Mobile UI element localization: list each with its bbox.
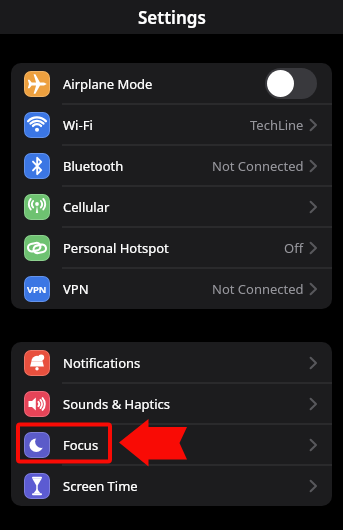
button[interactable]: Focus — [11, 424, 332, 465]
button[interactable]: Personal Hotspot — [11, 227, 332, 268]
staticText: Personal Hotspot — [63, 239, 169, 257]
staticText: VPN — [63, 280, 89, 298]
button[interactable]: Airplane Mode — [11, 63, 332, 104]
button[interactable]: Notifications — [11, 342, 332, 383]
staticText: TechLine — [250, 116, 304, 134]
button[interactable]: Cellular — [11, 186, 332, 227]
staticText: Cellular — [63, 198, 110, 216]
staticText: Screen Time — [63, 477, 138, 495]
staticText: Notifications — [63, 354, 141, 372]
button[interactable]: Screen Time — [11, 465, 332, 506]
staticText: Not Connected — [212, 157, 304, 175]
staticText: VPN — [27, 283, 47, 296]
button[interactable]: Wi-Fi — [11, 104, 332, 145]
staticText: Bluetooth — [63, 157, 124, 175]
staticText: Focus — [63, 436, 99, 454]
staticText: Not Connected — [212, 280, 304, 298]
staticText: Sounds & Haptics — [63, 395, 171, 413]
staticText: Wi-Fi — [63, 116, 93, 134]
staticText: Settings — [138, 6, 206, 29]
button[interactable]: Sounds & Haptics — [11, 383, 332, 424]
staticText: Airplane Mode — [63, 75, 153, 93]
staticText: Off — [284, 239, 304, 257]
button[interactable]: VPN — [11, 268, 332, 309]
button[interactable]: Bluetooth — [11, 145, 332, 186]
